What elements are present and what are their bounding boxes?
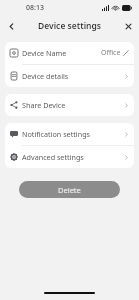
button[interactable]: Advanced settings xyxy=(5,146,134,168)
staticText: Delete xyxy=(58,185,81,195)
button[interactable]: Delete xyxy=(19,181,120,198)
staticText: Notification settings xyxy=(22,129,124,139)
staticText: Office xyxy=(101,48,121,58)
staticText: 08:13 xyxy=(26,3,44,13)
staticText: Advanced settings xyxy=(22,152,124,162)
button[interactable]: Notification settings xyxy=(5,123,134,145)
button[interactable]: Device Name xyxy=(5,42,134,64)
button[interactable]: Device details xyxy=(5,65,134,87)
staticText: Device details xyxy=(22,71,124,81)
staticText: Device Name xyxy=(22,48,101,58)
staticText: Share Device xyxy=(22,100,124,110)
button[interactable]: Share Device xyxy=(5,94,134,116)
button[interactable]: Back xyxy=(3,18,19,34)
button[interactable]: Close xyxy=(120,18,136,34)
staticText: Device settings xyxy=(38,20,101,32)
